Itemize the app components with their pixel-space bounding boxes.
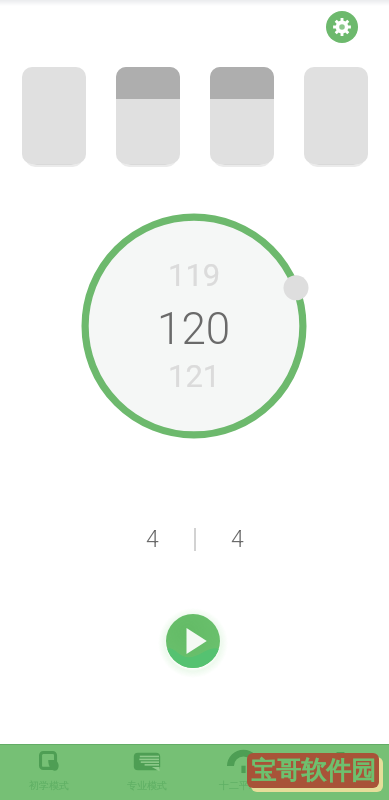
- staticText: 节拍器: [326, 779, 356, 792]
- staticText: 初学模式: [29, 779, 69, 792]
- button[interactable]: Beat: [22, 67, 86, 164]
- staticText: 121: [168, 358, 221, 394]
- button[interactable]: 4: [196, 522, 279, 556]
- button[interactable]: Play: [158, 606, 228, 676]
- button[interactable]: Beat: [116, 67, 180, 164]
- staticText: 专业模式: [127, 779, 167, 792]
- button[interactable]: 4: [111, 522, 194, 556]
- button[interactable]: Beat: [210, 67, 274, 164]
- staticText: 4: [146, 526, 159, 553]
- button[interactable]: Beat: [304, 67, 368, 164]
- staticText: 宝哥软件园: [251, 755, 376, 786]
- staticText: 119: [168, 257, 221, 293]
- button[interactable]: Settings: [326, 11, 358, 43]
- button[interactable]: Tempo dial: [81, 213, 307, 439]
- button[interactable]: 节拍器: [292, 744, 389, 800]
- staticText: 120: [157, 303, 231, 355]
- button[interactable]: 十二平均律: [195, 744, 292, 800]
- staticText: 十二平均律: [219, 779, 269, 792]
- button[interactable]: 初学模式: [0, 744, 98, 800]
- staticText: 4: [231, 526, 244, 553]
- button[interactable]: 专业模式: [98, 744, 195, 800]
